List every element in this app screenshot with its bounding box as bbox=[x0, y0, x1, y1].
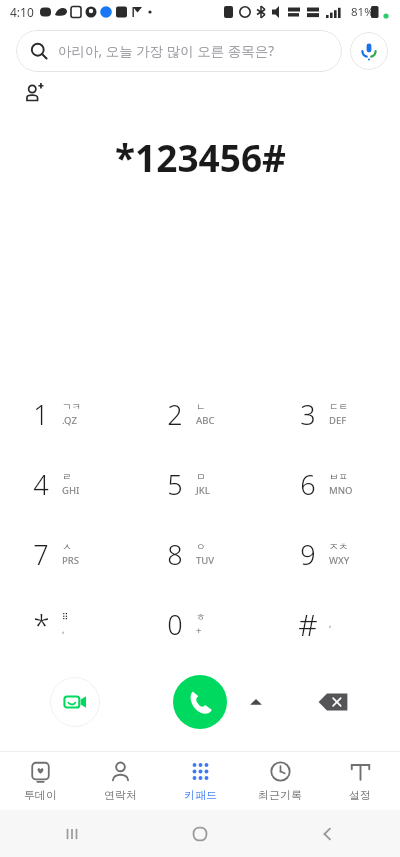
button[interactable]: 5 bbox=[134, 449, 267, 519]
button[interactable]: 투데이 bbox=[0, 752, 80, 810]
staticText: # bbox=[298, 604, 318, 645]
staticText: DEF bbox=[329, 414, 347, 427]
button[interactable]: 최근기록 bbox=[240, 752, 320, 810]
button[interactable]: 6 bbox=[267, 449, 400, 519]
staticText: 4:10 bbox=[10, 4, 34, 20]
button[interactable]: Call bbox=[173, 675, 227, 729]
staticText: * bbox=[33, 604, 50, 645]
button[interactable]: 1 bbox=[0, 379, 134, 449]
staticText: ㅈㅊ bbox=[329, 541, 348, 553]
button[interactable]: 2 bbox=[134, 379, 267, 449]
staticText: ㅂㅍ bbox=[329, 471, 348, 483]
button[interactable]: Recents bbox=[50, 812, 94, 856]
staticText: 1 bbox=[33, 396, 49, 433]
staticText: JKL bbox=[196, 484, 210, 497]
staticText: 아리아, 오늘 가장 많이 오른 종목은? bbox=[58, 42, 275, 60]
staticText: ㅅ bbox=[62, 541, 72, 553]
staticText: 6 bbox=[300, 466, 316, 503]
button[interactable]: 4 bbox=[0, 449, 134, 519]
staticText: ㅁ bbox=[196, 471, 206, 483]
button[interactable]: 키패드 bbox=[160, 752, 240, 810]
staticText: 최근기록 bbox=[258, 788, 302, 802]
button[interactable]: * bbox=[0, 589, 134, 659]
staticText: 7 bbox=[33, 536, 49, 573]
staticText: 투데이 bbox=[24, 788, 57, 802]
staticText: , bbox=[62, 623, 65, 636]
staticText: ㅇ bbox=[196, 541, 206, 553]
staticText: ㄴ bbox=[196, 401, 206, 413]
button[interactable]: Home bbox=[178, 812, 222, 856]
staticText: ㅎ bbox=[196, 611, 206, 623]
button[interactable]: Bixby voice search bbox=[350, 32, 388, 70]
staticText: 0 bbox=[167, 606, 183, 643]
staticText: 9 bbox=[300, 536, 316, 573]
staticText: 5 bbox=[167, 466, 183, 503]
button[interactable]: 연락처 bbox=[80, 752, 160, 810]
button[interactable]: Back bbox=[306, 812, 350, 856]
staticText: ㄱㅋ bbox=[62, 401, 81, 413]
staticText: ⠿ bbox=[62, 612, 69, 622]
button[interactable]: # bbox=[267, 589, 400, 659]
button[interactable]: 0 bbox=[134, 589, 267, 659]
button[interactable]: 아리아, 오늘 가장 많이 오른 종목은? bbox=[16, 30, 342, 72]
button[interactable]: 8 bbox=[134, 519, 267, 589]
button[interactable]: Add contact bbox=[16, 75, 52, 111]
staticText: 키패드 bbox=[184, 788, 217, 802]
staticText: PRS bbox=[62, 554, 80, 567]
button[interactable]: Backspace bbox=[311, 680, 355, 724]
staticText: , bbox=[329, 617, 332, 630]
staticText: 81% bbox=[351, 4, 374, 20]
button[interactable]: Expand bbox=[241, 687, 271, 717]
staticText: + bbox=[196, 624, 202, 637]
staticText: GHI bbox=[62, 484, 80, 497]
staticText: TUV bbox=[196, 554, 215, 567]
staticText: 8 bbox=[167, 536, 183, 573]
button[interactable]: 3 bbox=[267, 379, 400, 449]
button[interactable]: 7 bbox=[0, 519, 134, 589]
staticText: 4 bbox=[33, 466, 49, 503]
staticText: *123456# bbox=[115, 132, 286, 182]
button[interactable]: 9 bbox=[267, 519, 400, 589]
staticText: .QZ bbox=[62, 414, 77, 427]
staticText: 3 bbox=[300, 396, 316, 433]
button[interactable]: Video call bbox=[50, 677, 100, 727]
staticText: WXY bbox=[329, 554, 350, 567]
staticText: MNO bbox=[329, 484, 353, 497]
staticText: ㄷㅌ bbox=[329, 401, 348, 413]
staticText: ABC bbox=[196, 414, 215, 427]
button[interactable]: 설정 bbox=[320, 752, 400, 810]
staticText: 설정 bbox=[349, 788, 371, 802]
staticText: 연락처 bbox=[104, 788, 137, 802]
staticText: ㄹ bbox=[62, 471, 72, 483]
staticText: 2 bbox=[167, 396, 183, 433]
